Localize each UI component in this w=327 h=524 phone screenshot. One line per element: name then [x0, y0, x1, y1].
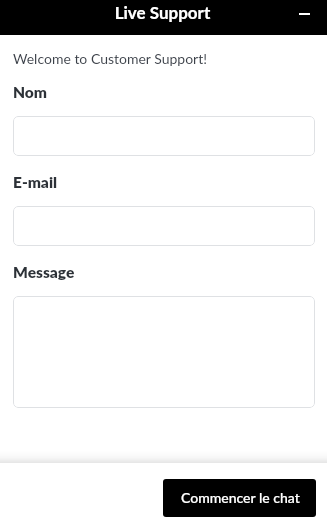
staticText: Welcome to Customer Support! — [13, 50, 207, 67]
button[interactable] — [13, 206, 315, 246]
staticText: E-mail — [13, 173, 58, 192]
button[interactable] — [13, 296, 315, 408]
button[interactable] — [13, 116, 315, 156]
staticText: Live Support — [0, 2, 326, 22]
staticText: Commencer le chat — [181, 489, 300, 506]
staticText: Message — [13, 263, 75, 282]
button[interactable]: Minimize chat — [292, 2, 316, 26]
button[interactable]: Commencer le chat — [163, 479, 316, 517]
staticText: Nom — [13, 83, 47, 102]
